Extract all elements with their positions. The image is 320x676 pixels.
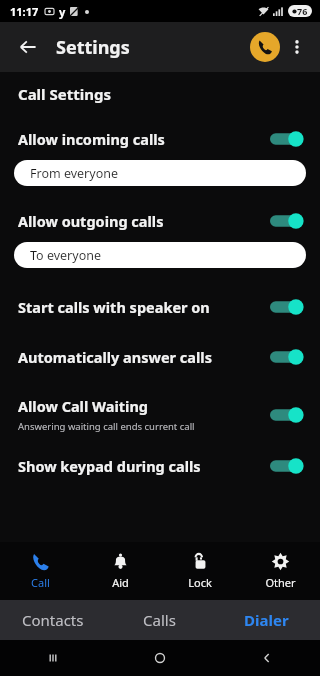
button[interactable]: Back: [213, 640, 320, 676]
button[interactable]: Show keypad during calls: [0, 453, 320, 479]
button[interactable]: Toggle: [270, 128, 306, 150]
button[interactable]: Lock: [160, 548, 240, 594]
staticText: Automatically answer calls: [18, 347, 212, 367]
button[interactable]: Aid: [80, 548, 160, 594]
button[interactable]: Start calls with speaker on: [0, 294, 320, 320]
button[interactable]: Toggle: [270, 346, 306, 368]
button[interactable]: Call: [0, 548, 80, 594]
staticText: Call Settings: [18, 84, 111, 104]
staticText: From everyone: [30, 165, 118, 182]
button[interactable]: Calls: [106, 600, 213, 640]
button[interactable]: Home: [106, 640, 213, 676]
button[interactable]: Automatically answer calls: [0, 344, 320, 370]
staticText: Dialer: [244, 610, 289, 630]
button[interactable]: Allow Call Waiting: [0, 394, 320, 435]
staticText: Lock: [188, 575, 212, 590]
button[interactable]: Recents: [0, 640, 106, 676]
staticText: Aid: [112, 575, 129, 590]
staticText: Allow Call Waiting: [18, 396, 149, 416]
staticText: Call: [31, 575, 50, 590]
staticText: y: [59, 4, 66, 19]
button[interactable]: Allow incoming calls: [0, 126, 320, 152]
staticText: Settings: [56, 35, 130, 60]
staticText: Allow incoming calls: [18, 129, 165, 149]
button[interactable]: Back: [8, 27, 48, 67]
button[interactable]: More options: [280, 30, 314, 64]
staticText: Contacts: [22, 610, 84, 630]
staticText: Allow outgoing calls: [18, 211, 164, 231]
button[interactable]: Allow outgoing calls: [0, 208, 320, 234]
button[interactable]: Toggle: [270, 455, 306, 477]
button[interactable]: Dialer: [213, 600, 320, 640]
staticText: Show keypad during calls: [18, 456, 201, 476]
button[interactable]: From everyone: [14, 160, 306, 186]
staticText: Start calls with speaker on: [18, 297, 210, 317]
staticText: 11:17: [10, 4, 39, 19]
staticText: Other: [265, 575, 296, 590]
button[interactable]: Toggle: [270, 296, 306, 318]
button[interactable]: Other: [240, 548, 320, 594]
staticText: Calls: [143, 610, 176, 630]
button[interactable]: Call: [250, 32, 280, 62]
button[interactable]: Toggle: [270, 404, 306, 426]
button[interactable]: To everyone: [14, 242, 306, 268]
staticText: Answering waiting call ends current call: [18, 420, 195, 433]
button[interactable]: Contacts: [0, 600, 106, 640]
staticText: To everyone: [30, 247, 101, 264]
staticText: 76: [297, 5, 308, 17]
button[interactable]: Toggle: [270, 210, 306, 232]
